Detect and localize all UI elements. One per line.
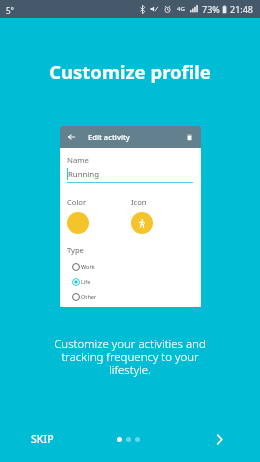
staticText: Other <box>81 293 97 301</box>
staticText: 5° <box>6 5 14 16</box>
staticText: Customize profile <box>0 59 260 84</box>
staticText: SKIP <box>31 432 54 446</box>
staticText: Color <box>67 197 87 207</box>
staticText: Running <box>68 169 99 180</box>
button[interactable]: Next <box>210 430 228 448</box>
staticText: 21:48 <box>230 3 254 15</box>
staticText: Icon <box>131 197 147 207</box>
staticText: Customize your activities and tracking f… <box>50 336 210 378</box>
staticText: Name <box>67 155 89 166</box>
button[interactable]: Other <box>67 289 193 304</box>
button[interactable]: Pick icon <box>131 212 153 234</box>
staticText: 73% <box>202 3 220 15</box>
button[interactable]: Back <box>64 130 78 144</box>
button[interactable]: Life <box>67 274 193 289</box>
staticText: Edit activity <box>88 132 130 142</box>
staticText: Work <box>81 263 95 271</box>
staticText: Type <box>67 245 84 255</box>
staticText: 4G <box>177 5 185 13</box>
button[interactable]: SKIP <box>31 432 54 446</box>
button[interactable]: Delete <box>182 130 196 144</box>
button[interactable]: Pick color <box>67 212 89 234</box>
button[interactable]: Work <box>67 259 193 274</box>
staticText: Life <box>81 278 91 286</box>
